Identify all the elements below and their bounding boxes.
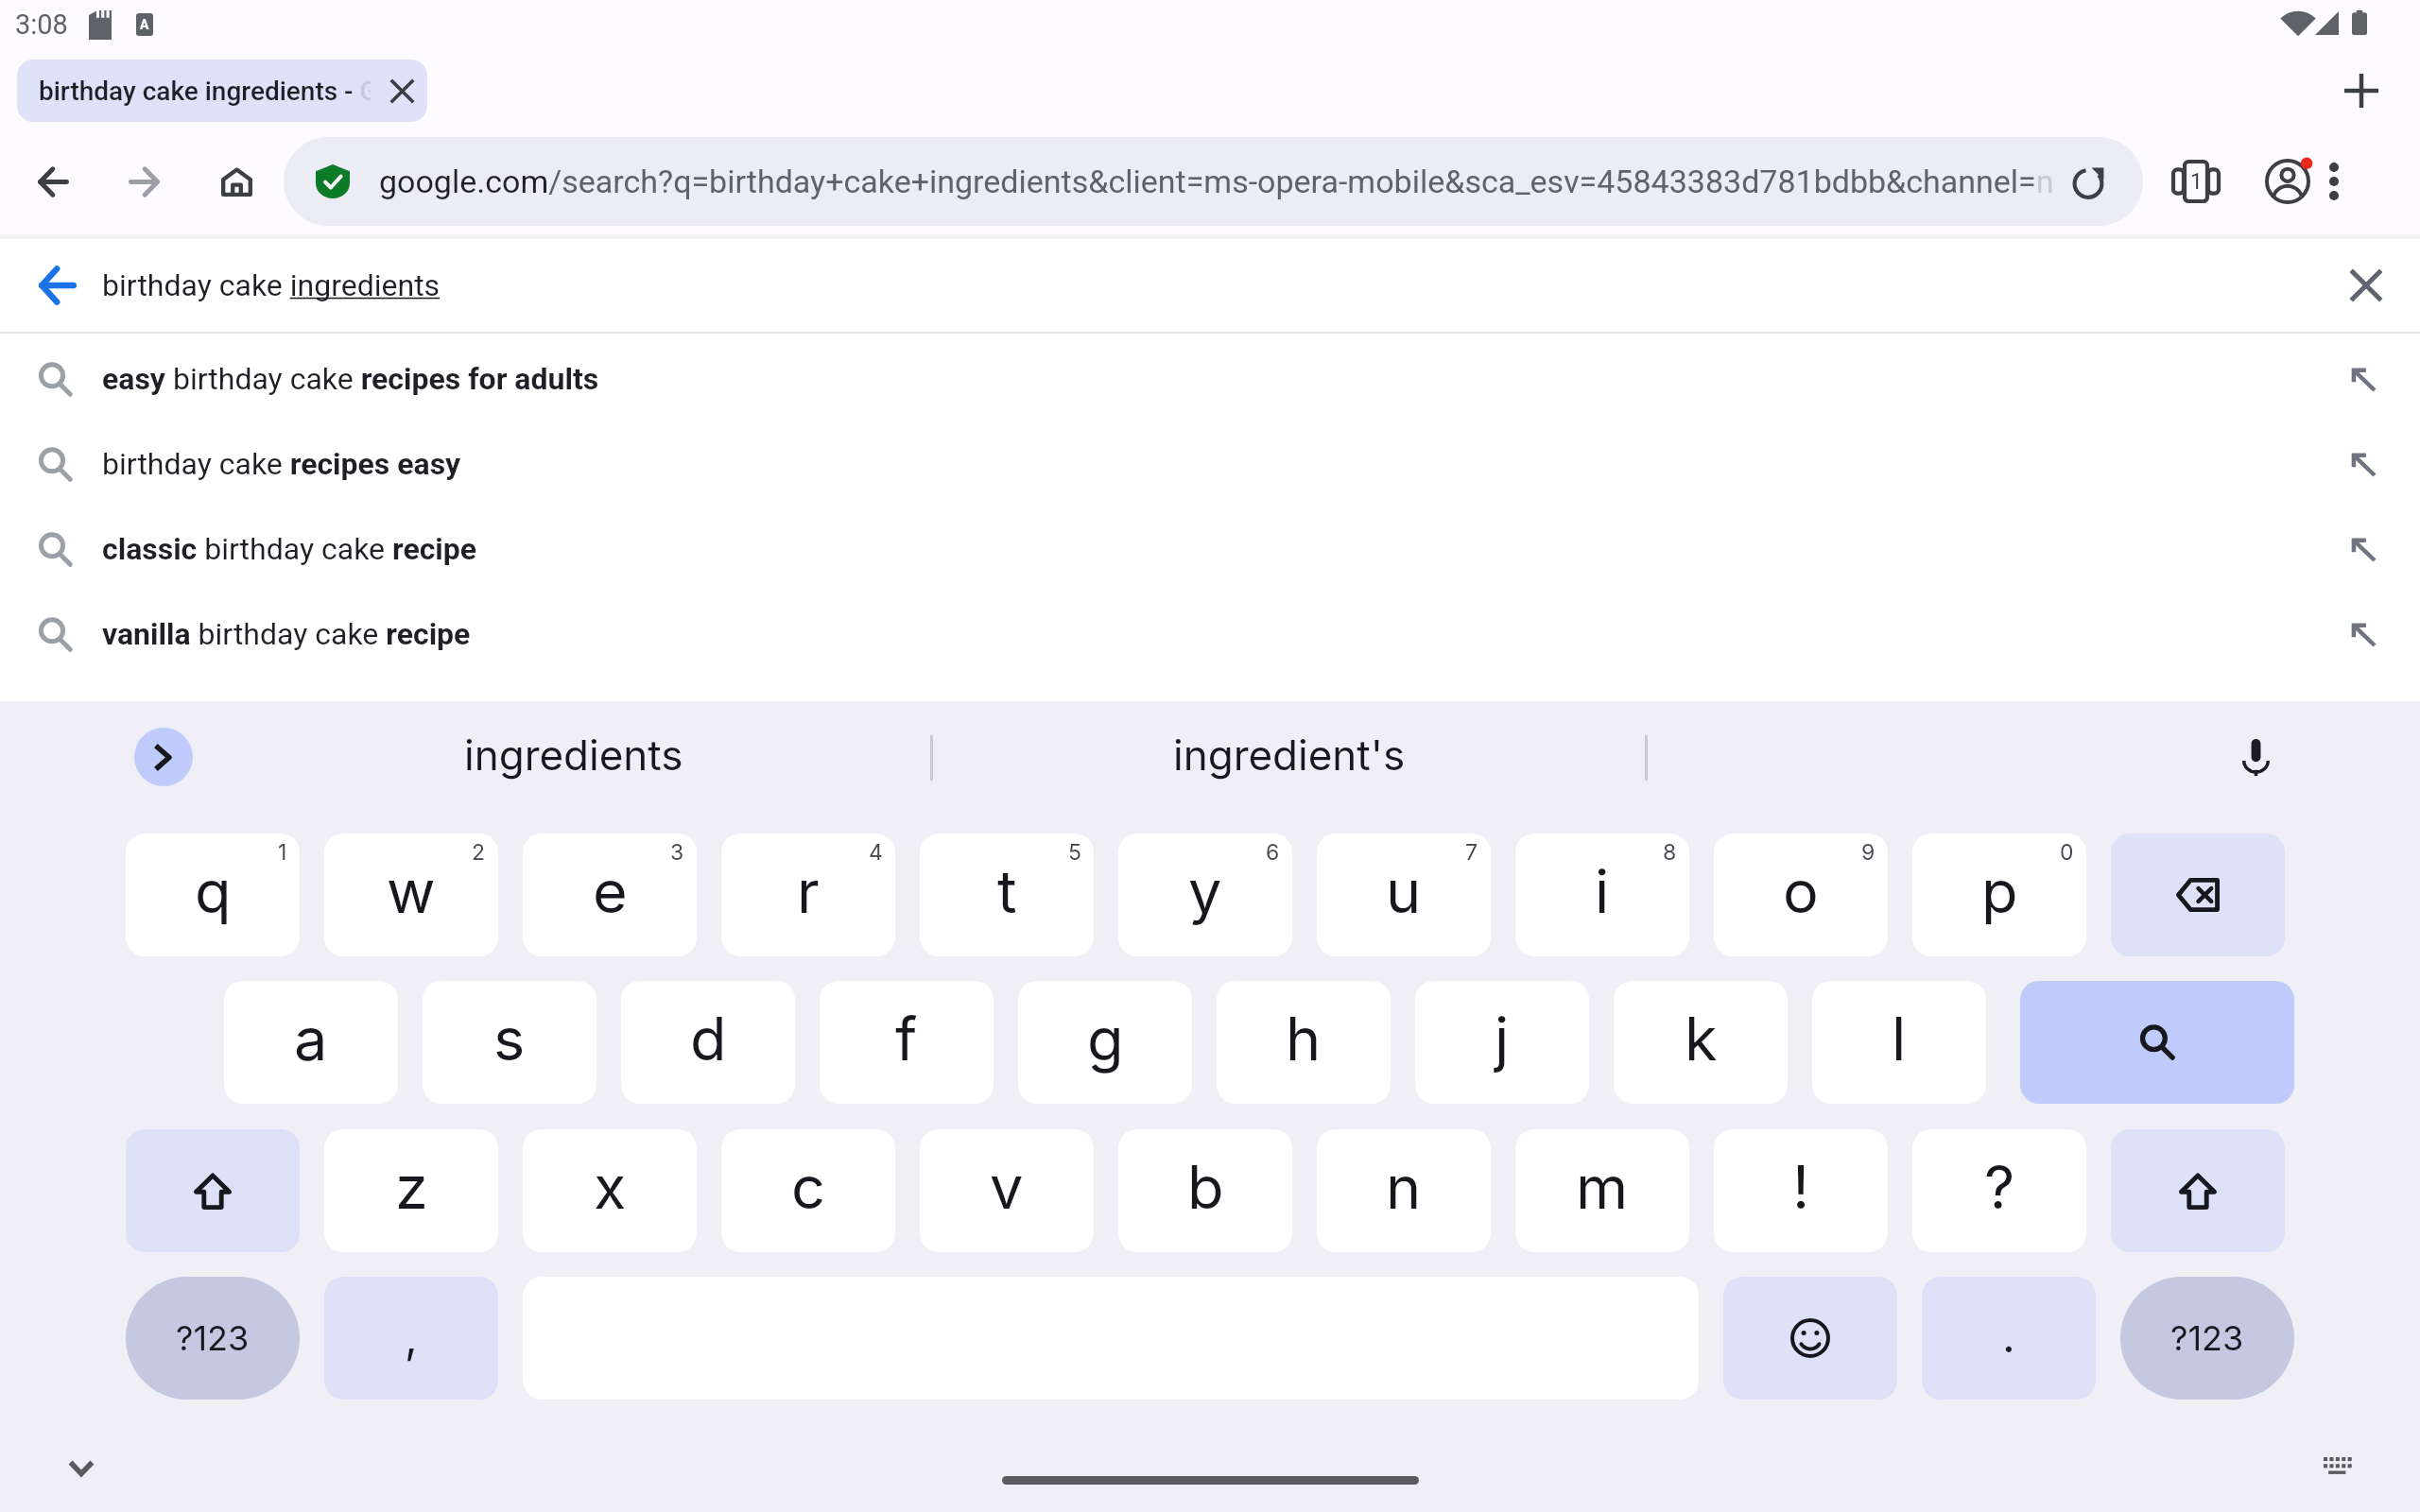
button[interactable]: Voice input	[2208, 716, 2303, 798]
button[interactable]: classic birthday cake recipe	[0, 507, 2420, 592]
staticText: A	[140, 17, 149, 32]
button[interactable]: vanilla birthday cake recipe	[0, 592, 2420, 677]
button[interactable]: Hide keyboard	[43, 1453, 119, 1484]
button[interactable]: k	[1614, 981, 1788, 1104]
button[interactable]: u	[1317, 833, 1491, 956]
button[interactable]: z	[324, 1129, 498, 1252]
button[interactable]: p	[1912, 833, 2086, 956]
button[interactable]: ingredient's	[934, 701, 1645, 812]
button[interactable]: s	[423, 981, 596, 1104]
button[interactable]: Backspace	[2111, 833, 2285, 956]
staticText: c	[791, 1151, 825, 1223]
button[interactable]: ?	[1912, 1129, 2086, 1252]
staticText: 7	[1465, 839, 1478, 866]
button[interactable]: More options	[2305, 152, 2363, 211]
staticText: ?123	[176, 1317, 250, 1359]
button[interactable]: Home	[200, 146, 272, 217]
button[interactable]: birthday cake recipes easy	[0, 421, 2420, 507]
staticText: x	[594, 1151, 627, 1223]
button[interactable]: Close tab	[377, 66, 426, 115]
button[interactable]: birthday cake ingredients - G	[17, 60, 427, 122]
button[interactable]: Reload	[2058, 151, 2118, 212]
button[interactable]: Emoji	[1723, 1277, 1897, 1400]
staticText: 1	[2190, 169, 2203, 195]
staticText: birthday cake recipes easy	[102, 446, 461, 482]
button[interactable]: t	[920, 833, 1094, 956]
staticText: 3	[670, 839, 684, 866]
button[interactable]: x	[523, 1129, 697, 1252]
button[interactable]: l	[1812, 981, 1986, 1104]
button[interactable]: w	[324, 833, 498, 956]
staticText: f	[895, 1003, 918, 1074]
button[interactable]: Forward	[108, 146, 180, 217]
staticText: !	[1792, 1151, 1810, 1223]
button[interactable]: m	[1515, 1129, 1689, 1252]
button[interactable]: q	[126, 833, 300, 956]
button[interactable]: Account	[2252, 146, 2324, 217]
staticText: l	[1892, 1003, 1907, 1074]
staticText: z	[395, 1151, 428, 1223]
button[interactable]: New tab	[2331, 60, 2392, 121]
button[interactable]: i	[1515, 833, 1689, 956]
staticText: 3:08	[15, 9, 68, 41]
button[interactable]: Use suggestion	[2337, 608, 2390, 661]
staticText: 6	[1266, 839, 1280, 866]
button[interactable]: ,	[324, 1277, 498, 1400]
button[interactable]: ?123	[126, 1277, 300, 1400]
staticText: google.com/search?q=birthday+cake+ingred…	[379, 163, 2054, 200]
button[interactable]: o	[1714, 833, 1888, 956]
button[interactable]: Search	[2020, 981, 2294, 1104]
button[interactable]: Shift	[126, 1129, 300, 1252]
button[interactable]: Back	[28, 256, 87, 315]
staticText: ?123	[2170, 1317, 2244, 1359]
button[interactable]: a	[224, 981, 398, 1104]
staticText: 5	[1068, 839, 1081, 866]
button[interactable]: google.com/search?q=birthday+cake+ingred…	[284, 137, 2143, 226]
staticText: ?	[1984, 1151, 2015, 1223]
button[interactable]: Back	[17, 146, 89, 217]
button[interactable]: More suggestions	[134, 728, 193, 786]
staticText: 1	[278, 839, 287, 866]
button[interactable]: v	[920, 1129, 1094, 1252]
staticText: q	[195, 855, 232, 927]
button[interactable]: h	[1217, 981, 1391, 1104]
staticText: k	[1685, 1003, 1718, 1074]
button[interactable]: Use suggestion	[2337, 523, 2390, 576]
button[interactable]: j	[1415, 981, 1589, 1104]
staticText: r	[797, 855, 820, 927]
button[interactable]: d	[621, 981, 795, 1104]
button[interactable]: Clear	[2338, 257, 2394, 314]
staticText: j	[1495, 1003, 1510, 1074]
button[interactable]: r	[721, 833, 895, 956]
staticText: 4	[869, 839, 883, 866]
button[interactable]: Switch keyboard	[2301, 1447, 2377, 1485]
staticText: b	[1187, 1151, 1224, 1223]
staticText: g	[1087, 1003, 1124, 1074]
button[interactable]: c	[721, 1129, 895, 1252]
button[interactable]: Use suggestion	[2337, 352, 2390, 405]
staticText: d	[690, 1003, 727, 1074]
staticText: easy birthday cake recipes for adults	[102, 361, 599, 397]
button[interactable]: .	[1922, 1277, 2096, 1400]
staticText: ,	[405, 1309, 418, 1364]
button[interactable]: n	[1317, 1129, 1491, 1252]
button[interactable]: Use suggestion	[2337, 438, 2390, 490]
staticText: n	[1386, 1151, 1422, 1223]
button[interactable]: Tabs	[2160, 146, 2232, 217]
button[interactable]: ?123	[2120, 1277, 2294, 1400]
button[interactable]: !	[1714, 1129, 1888, 1252]
button[interactable]: f	[820, 981, 994, 1104]
staticText: .	[2002, 1308, 2015, 1363]
button[interactable]: Shift	[2111, 1129, 2285, 1252]
button[interactable]: e	[523, 833, 697, 956]
button[interactable]: easy birthday cake recipes for adults	[0, 336, 2420, 421]
staticText: o	[1783, 855, 1819, 927]
button[interactable]: g	[1018, 981, 1192, 1104]
button[interactable]: b	[1118, 1129, 1292, 1252]
button[interactable]: y	[1118, 833, 1292, 956]
button[interactable]: Back	[0, 239, 2420, 332]
staticText: ingredients	[464, 730, 683, 780]
button[interactable]: ingredients	[217, 701, 929, 812]
staticText: birthday cake ingredients - G	[39, 76, 371, 107]
